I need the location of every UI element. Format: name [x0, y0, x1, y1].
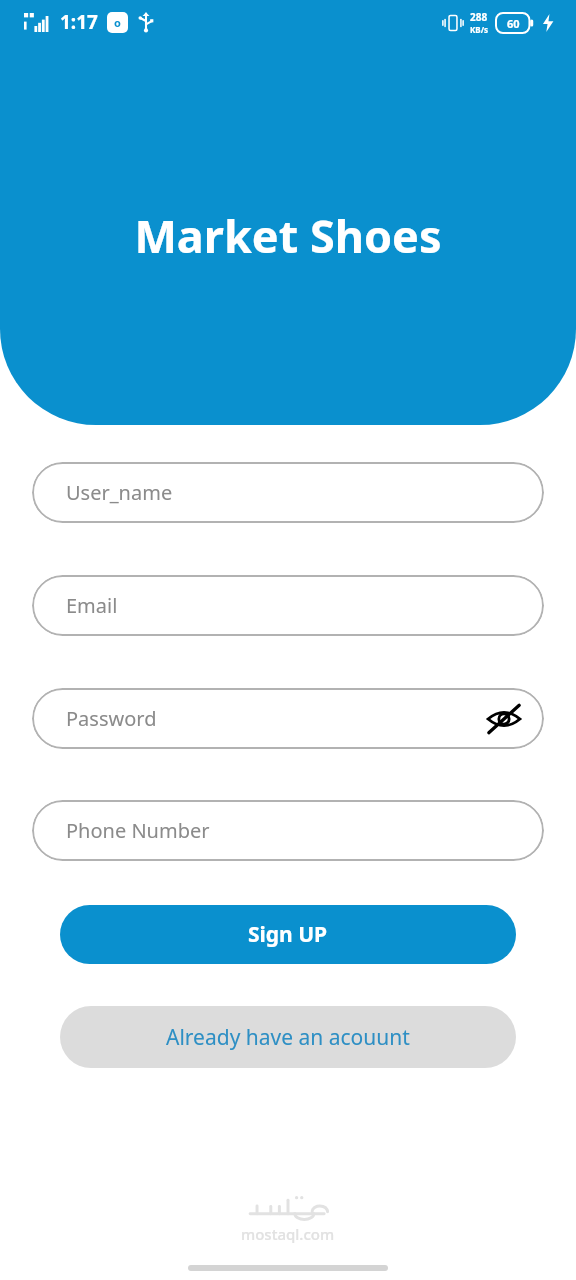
- staticText: Sign UP: [248, 920, 328, 949]
- staticText: KB/s: [470, 24, 488, 35]
- button[interactable]: Toggle password visibility: [482, 697, 526, 741]
- staticText: mostaql.com: [241, 1224, 335, 1244]
- staticText: Email: [66, 592, 118, 619]
- staticText: o: [114, 15, 121, 30]
- button[interactable]: Sign UP: [60, 905, 516, 964]
- staticText: 288: [470, 10, 488, 24]
- staticText: 1:17: [60, 9, 98, 35]
- button[interactable]: Email: [32, 575, 544, 636]
- staticText: Already have an acouunt: [166, 1023, 410, 1052]
- staticText: 60: [507, 16, 520, 31]
- staticText: User_name: [66, 479, 173, 506]
- staticText: Market Shoes: [134, 205, 442, 266]
- staticText: Phone Number: [66, 817, 210, 844]
- button[interactable]: User_name: [32, 462, 544, 523]
- staticText: Password: [66, 705, 157, 732]
- button[interactable]: Password: [32, 688, 544, 749]
- button[interactable]: Already have an acouunt: [60, 1006, 516, 1068]
- button[interactable]: Phone Number: [32, 800, 544, 861]
